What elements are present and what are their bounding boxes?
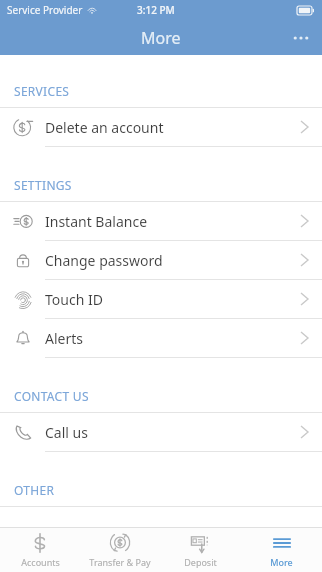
button[interactable]: Transfer & Pay (80, 528, 160, 572)
staticText: More (270, 556, 293, 568)
button[interactable]: Delete an account (0, 108, 322, 146)
staticText: Touch ID (45, 290, 301, 309)
staticText: 3:12 PM (137, 3, 175, 17)
staticText: Change password (45, 251, 301, 270)
button[interactable]: More options (280, 28, 322, 48)
button[interactable]: Change password (0, 241, 322, 279)
button[interactable]: Instant Balance (0, 202, 322, 240)
staticText: SERVICES (14, 83, 70, 99)
staticText: SETTINGS (14, 177, 72, 193)
button[interactable]: Touch ID (0, 280, 322, 318)
staticText: Deposit (184, 556, 217, 568)
staticText: Instant Balance (45, 212, 301, 231)
staticText: More (141, 27, 181, 49)
button[interactable]: Alerts (0, 319, 322, 357)
staticText: Delete an account (45, 118, 301, 137)
button[interactable]: More (241, 528, 322, 572)
button[interactable]: Accounts (0, 528, 80, 572)
staticText: OTHER (14, 482, 55, 498)
button[interactable]: Deposit (160, 528, 241, 572)
staticText: Accounts (21, 556, 60, 568)
staticText: Transfer & Pay (89, 556, 151, 568)
staticText: Service Provider (7, 3, 83, 17)
staticText: Call us (45, 423, 301, 442)
staticText: CONTACT US (14, 388, 89, 404)
button[interactable]: Call us (0, 413, 322, 451)
staticText: Alerts (45, 329, 301, 348)
